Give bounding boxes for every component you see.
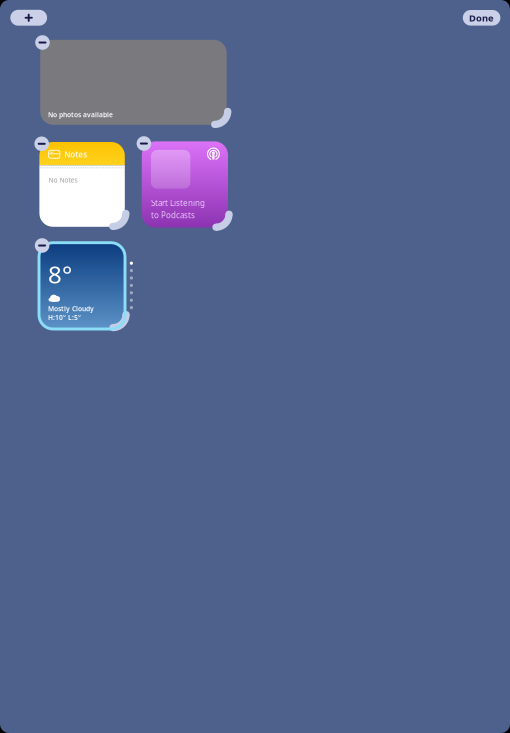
button[interactable]: Notes	[39, 142, 125, 227]
button[interactable]: Done	[463, 10, 500, 26]
button[interactable]: Remove widget	[35, 35, 50, 50]
staticText: Notes	[64, 149, 87, 160]
staticText: No photos available	[48, 110, 113, 119]
staticText: to Podcasts	[151, 210, 195, 220]
button[interactable]: 8°	[39, 243, 125, 329]
button[interactable]: Remove widget	[137, 136, 151, 151]
button[interactable]: Remove widget	[35, 238, 49, 253]
button[interactable]: No photos available	[40, 40, 227, 125]
staticText: Start Listening	[151, 198, 205, 208]
staticText: Mostly Cloudy	[48, 304, 94, 313]
button[interactable]: Start Listening	[142, 141, 228, 228]
staticText: No Notes	[49, 175, 78, 184]
staticText: 8°	[48, 258, 72, 290]
button[interactable]: Remove widget	[34, 136, 49, 151]
staticText: Done	[469, 12, 494, 24]
button[interactable]: Add widget	[10, 10, 47, 26]
staticText: H:10° L:5°	[48, 313, 81, 322]
